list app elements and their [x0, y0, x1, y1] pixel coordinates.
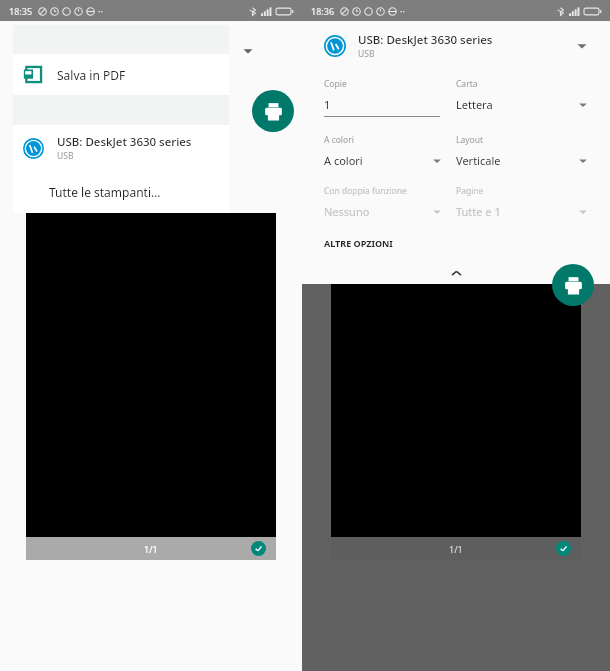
- staticText: Nessuno: [324, 204, 370, 219]
- staticText: Pagine: [456, 185, 484, 197]
- staticText: Verticale: [456, 153, 501, 168]
- button[interactable]: Salva in PDF: [13, 54, 229, 95]
- button[interactable]: Page selected: [556, 541, 571, 556]
- staticText: USB: [57, 150, 74, 162]
- staticText: USB: [358, 48, 375, 60]
- button[interactable]: A colori: [324, 134, 456, 168]
- staticText: Tutte e 1: [456, 204, 501, 219]
- staticText: Layout: [456, 134, 484, 146]
- button[interactable]: ALTRE OPZIONI: [324, 237, 393, 249]
- staticText: USB: DeskJet 3630 series: [358, 32, 493, 48]
- button[interactable]: [324, 262, 588, 284]
- button[interactable]: Print: [552, 264, 594, 306]
- staticText: 1/1: [449, 543, 463, 555]
- button[interactable]: USB: DeskJet 3630 series: [13, 125, 229, 171]
- staticText: Carta: [456, 78, 478, 90]
- staticText: 18:35: [9, 5, 33, 17]
- staticText: A colori: [324, 134, 354, 146]
- staticText: 18:36: [311, 5, 335, 17]
- button[interactable]: Tutte le stampanti…: [13, 171, 229, 213]
- button[interactable]: USB: DeskJet 3630 series: [324, 32, 588, 60]
- staticText: Salva in PDF: [57, 67, 126, 83]
- staticText: 1/1: [144, 543, 158, 555]
- button[interactable]: Carta: [456, 78, 588, 112]
- staticText: Copie: [324, 78, 347, 90]
- button[interactable]: Layout: [456, 134, 588, 168]
- button[interactable]: Page selected: [251, 541, 266, 556]
- staticText: USB: DeskJet 3630 series: [57, 134, 192, 150]
- staticText: 1: [324, 97, 331, 112]
- staticText: Lettera: [456, 97, 493, 112]
- staticText: ··: [98, 5, 103, 17]
- button[interactable]: Print: [252, 90, 294, 132]
- button[interactable]: Copie: [324, 78, 456, 117]
- staticText: A colori: [324, 153, 363, 168]
- button[interactable]: Pagine: [456, 185, 588, 219]
- button[interactable]: Con doppia funzione: [324, 185, 456, 219]
- staticText: Con doppia funzione: [324, 185, 407, 197]
- staticText: Tutte le stampanti…: [49, 184, 161, 200]
- staticText: ··: [400, 5, 405, 17]
